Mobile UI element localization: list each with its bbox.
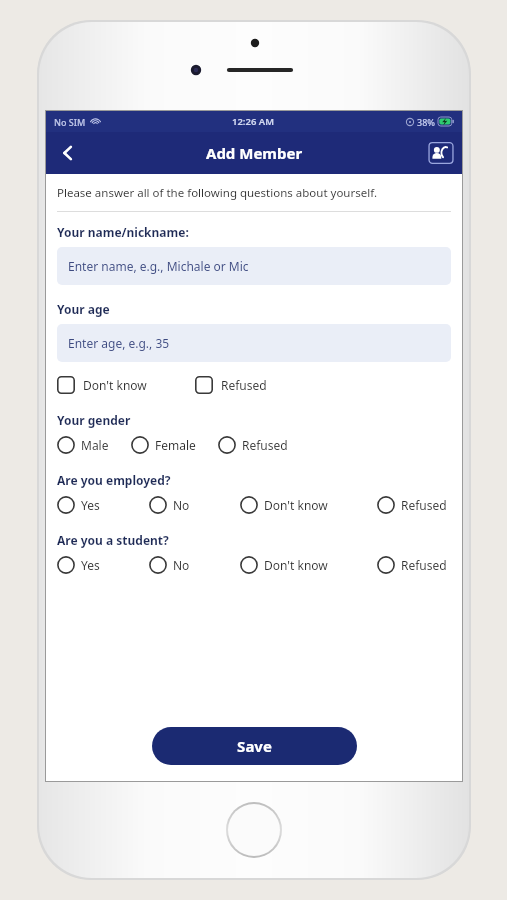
- staticText: Don't know: [264, 557, 328, 573]
- staticText: No SIM: [54, 116, 86, 128]
- staticText: Yes: [81, 497, 100, 513]
- staticText: Female: [155, 437, 196, 453]
- staticText: Your gender: [57, 412, 131, 428]
- staticText: Save: [237, 736, 272, 756]
- staticText: 12:26 AM: [232, 115, 275, 128]
- staticText: Refused: [242, 437, 288, 453]
- button[interactable]: Female: [131, 434, 196, 456]
- staticText: Are you employed?: [57, 472, 171, 488]
- button[interactable]: Don't know: [57, 374, 147, 396]
- staticText: 38%: [417, 116, 435, 128]
- staticText: Male: [81, 437, 109, 453]
- button[interactable]: Yes: [57, 554, 100, 576]
- button[interactable]: No: [149, 554, 190, 576]
- button[interactable]: Refused: [218, 434, 288, 456]
- button[interactable]: No: [149, 494, 190, 516]
- staticText: Refused: [401, 497, 447, 513]
- staticText: Refused: [401, 557, 447, 573]
- staticText: Your age: [57, 301, 110, 317]
- button[interactable]: Refused: [195, 374, 267, 396]
- staticText: Don't know: [264, 497, 328, 513]
- staticText: Your name/nickname:: [57, 224, 189, 240]
- staticText: Please answer all of the following quest…: [57, 185, 377, 201]
- button[interactable]: Save: [152, 727, 357, 765]
- staticText: Add Member: [206, 143, 303, 163]
- button[interactable]: Don't know: [240, 554, 328, 576]
- button[interactable]: Back: [46, 132, 90, 174]
- button[interactable]: Contacts: [428, 140, 454, 166]
- staticText: Enter name, e.g., Michale or Mic: [68, 258, 249, 274]
- staticText: Enter age, e.g., 35: [68, 335, 170, 351]
- staticText: Yes: [81, 557, 100, 573]
- other: Home: [228, 804, 280, 856]
- button[interactable]: Yes: [57, 494, 100, 516]
- button[interactable]: Refused: [377, 494, 447, 516]
- button[interactable]: Don't know: [240, 494, 328, 516]
- staticText: Refused: [221, 377, 267, 393]
- button[interactable]: Enter name, e.g., Michale or Mic: [57, 247, 451, 285]
- staticText: No: [173, 557, 190, 573]
- button[interactable]: Enter age, e.g., 35: [57, 324, 451, 362]
- staticText: Are you a student?: [57, 532, 169, 548]
- button[interactable]: Male: [57, 434, 109, 456]
- staticText: Don't know: [83, 377, 147, 393]
- button[interactable]: Refused: [377, 554, 447, 576]
- staticText: No: [173, 497, 190, 513]
